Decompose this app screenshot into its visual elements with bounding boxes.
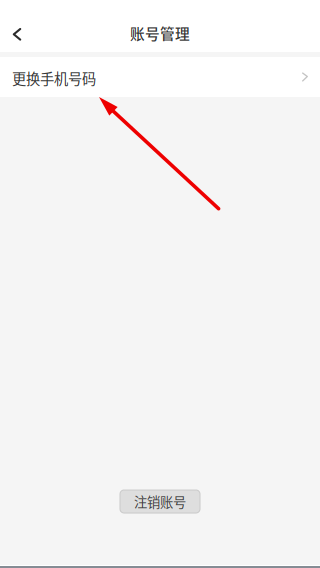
button[interactable]: 注销账号 (120, 490, 200, 513)
staticText: 账号管理 (130, 22, 190, 44)
button[interactable]: Back (0, 14, 34, 52)
staticText: 更换手机号码 (12, 68, 96, 88)
button[interactable]: 更换手机号码 (0, 57, 320, 97)
staticText: 注销账号 (134, 492, 186, 511)
